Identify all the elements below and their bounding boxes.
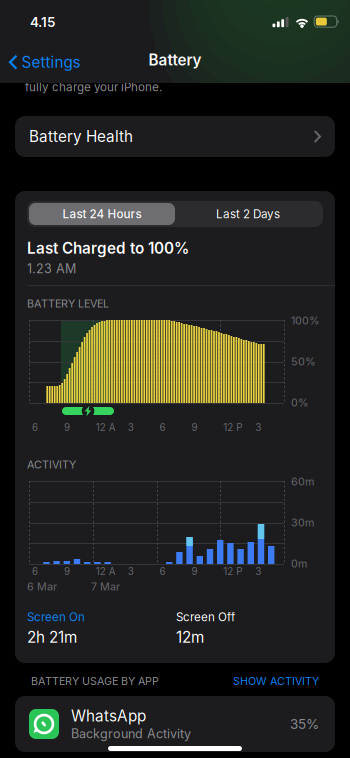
- staticText: Screen Off: [176, 610, 235, 624]
- staticText: 9: [64, 565, 70, 577]
- staticText: BATTERY USAGE BY APP: [31, 674, 159, 687]
- staticText: 9: [191, 565, 197, 577]
- staticText: 2h 21m: [27, 628, 77, 646]
- staticText: 30m: [291, 516, 314, 529]
- staticText: 7 Mar: [91, 580, 120, 593]
- button[interactable]: Settings: [9, 50, 80, 74]
- staticText: 6: [32, 421, 38, 433]
- staticText: 3: [128, 565, 134, 577]
- staticText: 12 A: [96, 565, 116, 577]
- staticText: Battery Health: [29, 127, 133, 146]
- staticText: 4.15: [30, 14, 55, 30]
- staticText: 100%: [291, 314, 320, 327]
- staticText: 6: [159, 565, 165, 577]
- button[interactable]: WhatsApp: [15, 696, 335, 752]
- staticText: 0m: [291, 557, 307, 570]
- button[interactable]: Battery Health: [15, 116, 335, 157]
- staticText: 3: [255, 421, 261, 433]
- staticText: Last Charged to 100%: [27, 239, 189, 257]
- staticText: 12 P: [223, 565, 242, 577]
- staticText: Last 2 Days: [216, 207, 280, 221]
- staticText: Screen On: [27, 610, 85, 624]
- button[interactable]: SHOW ACTIVITY: [233, 674, 319, 687]
- staticText: 6: [32, 565, 38, 577]
- button[interactable]: Last 24 Hours: [29, 203, 175, 225]
- staticText: BATTERY LEVEL: [27, 297, 109, 310]
- staticText: Last 24 Hours: [62, 207, 141, 221]
- staticText: 50%: [291, 355, 316, 368]
- staticText: 0%: [291, 396, 309, 409]
- staticText: 35%: [290, 716, 319, 732]
- button[interactable]: Last 2 Days: [175, 203, 321, 225]
- staticText: ACTIVITY: [27, 458, 76, 471]
- staticText: 60m: [291, 475, 314, 488]
- staticText: 6: [159, 421, 165, 433]
- staticText: Settings: [21, 53, 80, 71]
- staticText: 6 Mar: [27, 580, 57, 593]
- staticText: 12 A: [96, 421, 116, 433]
- staticText: 3: [128, 421, 134, 433]
- staticText: Battery: [148, 51, 201, 69]
- staticText: WhatsApp: [71, 707, 146, 725]
- staticText: 12m: [176, 628, 204, 646]
- staticText: 3: [255, 565, 261, 577]
- staticText: 9: [64, 421, 70, 433]
- staticText: 1.23 AM: [27, 261, 76, 276]
- staticText: SHOW ACTIVITY: [233, 674, 319, 687]
- staticText: 9: [191, 421, 197, 433]
- staticText: 12 P: [223, 421, 242, 433]
- staticText: fully charge your iPhone.: [25, 80, 162, 94]
- staticText: Background Activity: [71, 726, 191, 741]
